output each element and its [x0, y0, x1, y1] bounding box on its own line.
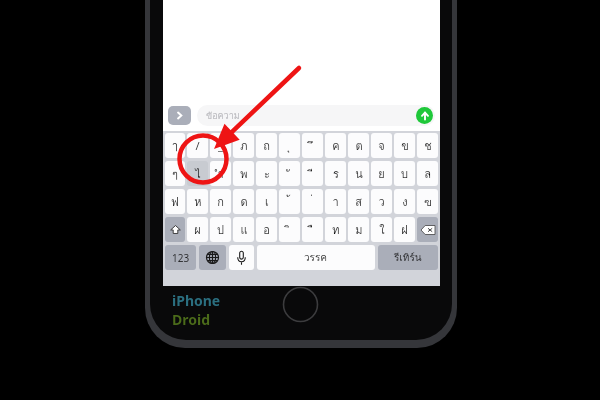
staticText: ห — [194, 193, 202, 210]
button[interactable]: ผ — [187, 217, 208, 242]
button[interactable]: ท — [325, 217, 346, 242]
button[interactable]: ค — [325, 133, 346, 158]
button[interactable]: ึ — [302, 133, 323, 158]
button[interactable]: ้ — [279, 189, 300, 214]
button[interactable]: จ — [371, 133, 392, 158]
button[interactable]: ง — [394, 189, 415, 214]
button[interactable]: Home — [282, 286, 319, 323]
button[interactable]: รีเทิร์น — [378, 245, 438, 270]
button[interactable]: ิ — [279, 217, 300, 242]
staticText: ค — [332, 137, 340, 154]
button[interactable]: Dictation — [229, 245, 254, 270]
button[interactable]: ถ — [256, 133, 277, 158]
button[interactable]: อ — [256, 217, 277, 242]
staticText: า — [332, 193, 339, 210]
staticText: รีเทิร์น — [394, 250, 422, 266]
button[interactable]: ป — [210, 217, 231, 242]
staticText: แ — [240, 221, 248, 238]
button[interactable]: ด — [233, 189, 254, 214]
staticText: ถ — [263, 137, 270, 154]
button[interactable]: ย — [371, 161, 392, 186]
button[interactable]: ข — [394, 133, 415, 158]
staticText: ก — [217, 193, 224, 210]
staticText: ข — [401, 137, 409, 154]
button[interactable]: ห — [187, 189, 208, 214]
button[interactable]: ๅ — [165, 133, 185, 158]
button[interactable]: า — [325, 189, 346, 214]
staticText: ผ — [194, 221, 201, 238]
button[interactable]: ่ — [302, 189, 323, 214]
button[interactable]: Backspace — [417, 217, 438, 242]
button[interactable]: แ — [233, 217, 254, 242]
button[interactable]: ล — [417, 161, 438, 186]
staticText: น — [355, 165, 363, 182]
button[interactable]: _ — [210, 133, 231, 158]
button[interactable]: พ — [233, 161, 254, 186]
button[interactable]: ฟ — [165, 189, 185, 214]
staticText: ข้อความ — [206, 109, 240, 123]
staticText: iPhone — [172, 291, 221, 310]
staticText: ต — [355, 137, 363, 154]
staticText: Droid — [172, 310, 211, 329]
staticText: ง — [402, 193, 408, 210]
button[interactable]: ต — [348, 133, 369, 158]
button[interactable]: ข้อความ — [197, 105, 435, 126]
button[interactable]: ื — [302, 217, 323, 242]
staticText: ไ — [195, 165, 201, 182]
staticText: ด — [240, 193, 248, 210]
staticText: ย — [378, 165, 385, 182]
button[interactable]: ส — [348, 189, 369, 214]
staticText: ท — [332, 221, 340, 238]
staticText: ฝ — [401, 221, 408, 238]
staticText: อ — [263, 221, 270, 238]
button[interactable]: ไ — [187, 161, 208, 186]
button[interactable]: 123 — [165, 245, 196, 270]
staticText: ส — [355, 193, 362, 210]
staticText: จ — [378, 137, 385, 154]
staticText: ฟ — [171, 193, 179, 210]
button[interactable]: ร — [325, 161, 346, 186]
staticText: ว — [378, 193, 385, 210]
button[interactable]: บ — [394, 161, 415, 186]
staticText: พ — [240, 165, 248, 182]
staticText: วรรค — [304, 250, 328, 266]
button[interactable]: ฝ — [394, 217, 415, 242]
staticText: 123 — [172, 251, 190, 265]
staticText: ะ — [264, 165, 270, 182]
button[interactable]: ี — [302, 161, 323, 186]
staticText: ำ — [217, 165, 224, 182]
button[interactable]: ะ — [256, 161, 277, 186]
button[interactable]: Shift — [165, 217, 185, 242]
button[interactable]: ฃ — [417, 189, 438, 214]
staticText: _ — [218, 138, 223, 153]
staticText: ป — [217, 221, 224, 238]
button[interactable]: ๆ — [165, 161, 185, 186]
staticText: ร — [333, 165, 339, 182]
staticText: ล — [424, 165, 431, 182]
button[interactable]: / — [187, 133, 208, 158]
button[interactable]: ว — [371, 189, 392, 214]
button[interactable]: ภ — [233, 133, 254, 158]
staticText: ช — [424, 137, 432, 154]
staticText: / — [195, 138, 200, 153]
button[interactable]: ั — [279, 161, 300, 186]
staticText: ๅ — [172, 137, 178, 154]
button[interactable]: น — [348, 161, 369, 186]
button[interactable]: วรรค — [257, 245, 375, 270]
staticText: บ — [401, 165, 408, 182]
button[interactable]: ุ — [279, 133, 300, 158]
staticText: ม — [355, 221, 363, 238]
button[interactable]: ใ — [371, 217, 392, 242]
button[interactable]: ม — [348, 217, 369, 242]
staticText: ฃ — [424, 193, 432, 210]
button[interactable]: ำ — [210, 161, 231, 186]
button[interactable]: Switch keyboard — [199, 245, 226, 270]
button[interactable]: ช — [417, 133, 438, 158]
staticText: ใ — [379, 221, 385, 238]
button[interactable]: ก — [210, 189, 231, 214]
staticText: เ — [265, 193, 269, 210]
staticText: ๆ — [172, 165, 178, 182]
button[interactable]: เ — [256, 189, 277, 214]
button[interactable]: App drawer — [168, 106, 191, 125]
button[interactable]: Send — [416, 107, 433, 124]
